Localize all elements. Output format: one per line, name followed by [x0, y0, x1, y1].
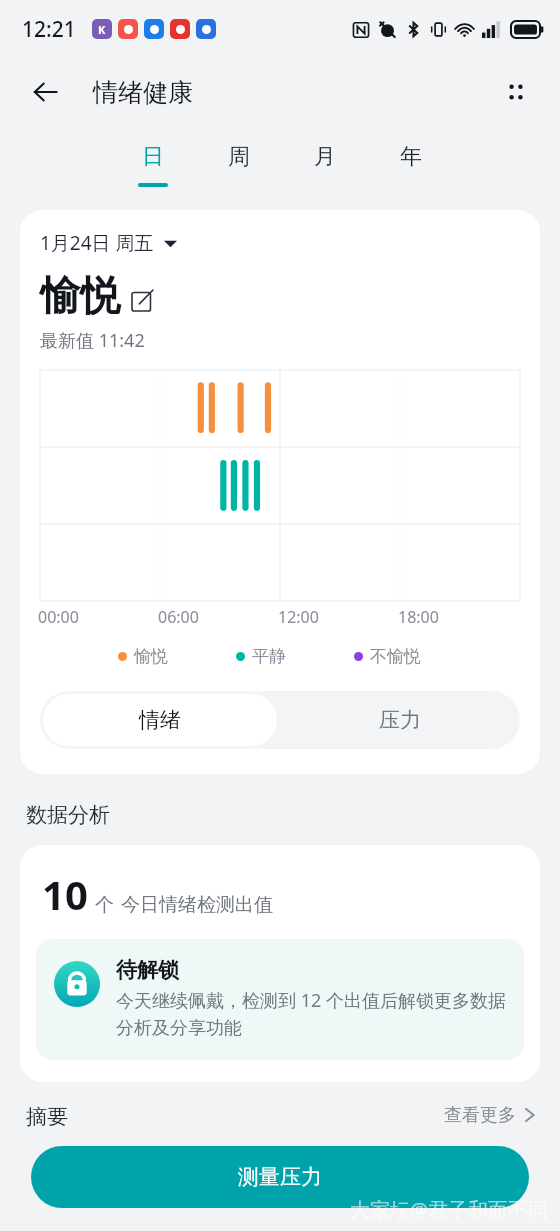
button[interactable]: 摘要 [26, 1104, 536, 1144]
staticText: 今天继续佩戴，检测到 12 个出值后解锁更多数据分析及分享功能 [116, 988, 508, 1040]
staticText: K [98, 22, 106, 37]
staticText: 不愉悦 [370, 646, 421, 667]
button[interactable]: 1月24日 周五 [40, 230, 177, 256]
staticText: 日 [142, 143, 164, 171]
button[interactable]: 年 [368, 126, 454, 200]
staticText: 摘要 [26, 1104, 68, 1130]
staticText: 压力 [379, 707, 421, 733]
staticText: 情绪 [139, 707, 181, 733]
staticText: 愉悦 [134, 646, 168, 667]
staticText: 06:00 [158, 606, 199, 628]
staticText: 平静 [252, 646, 286, 667]
button[interactable]: 待解锁 [36, 939, 524, 1060]
staticText: 最新值 11:42 [40, 328, 145, 353]
staticText: 愉悦 [40, 270, 120, 320]
staticText: 个 [95, 893, 114, 917]
staticText: 12:00 [278, 606, 319, 628]
staticText: 10 [42, 867, 88, 921]
button[interactable]: 编辑情绪 [129, 287, 155, 313]
staticText: 情绪健康 [93, 77, 193, 108]
staticText: 查看更多 [444, 1104, 516, 1127]
staticText: 12:21 [22, 15, 76, 44]
staticText: 大家坛@君子和而不同 [350, 1196, 548, 1223]
staticText: 今日情绪检测出值 [121, 893, 273, 917]
staticText: 1月24日 周五 [40, 230, 154, 256]
staticText: 月 [314, 143, 336, 171]
staticText: 周 [228, 143, 250, 171]
button[interactable]: 返回 [24, 70, 68, 114]
button[interactable]: 月 [282, 126, 368, 200]
button[interactable]: 测量压力 [31, 1146, 529, 1208]
staticText: 18:00 [398, 606, 439, 628]
button[interactable]: 更多选项 [494, 70, 538, 114]
button[interactable]: 情绪 [43, 694, 277, 746]
staticText: 待解锁 [116, 957, 179, 983]
staticText: 测量压力 [238, 1164, 322, 1190]
button[interactable]: 日 [110, 126, 196, 200]
staticText: 年 [400, 143, 422, 171]
button[interactable]: 压力 [280, 691, 520, 749]
staticText: 00:00 [38, 606, 79, 628]
staticText: 数据分析 [26, 802, 110, 828]
button[interactable]: 周 [196, 126, 282, 200]
